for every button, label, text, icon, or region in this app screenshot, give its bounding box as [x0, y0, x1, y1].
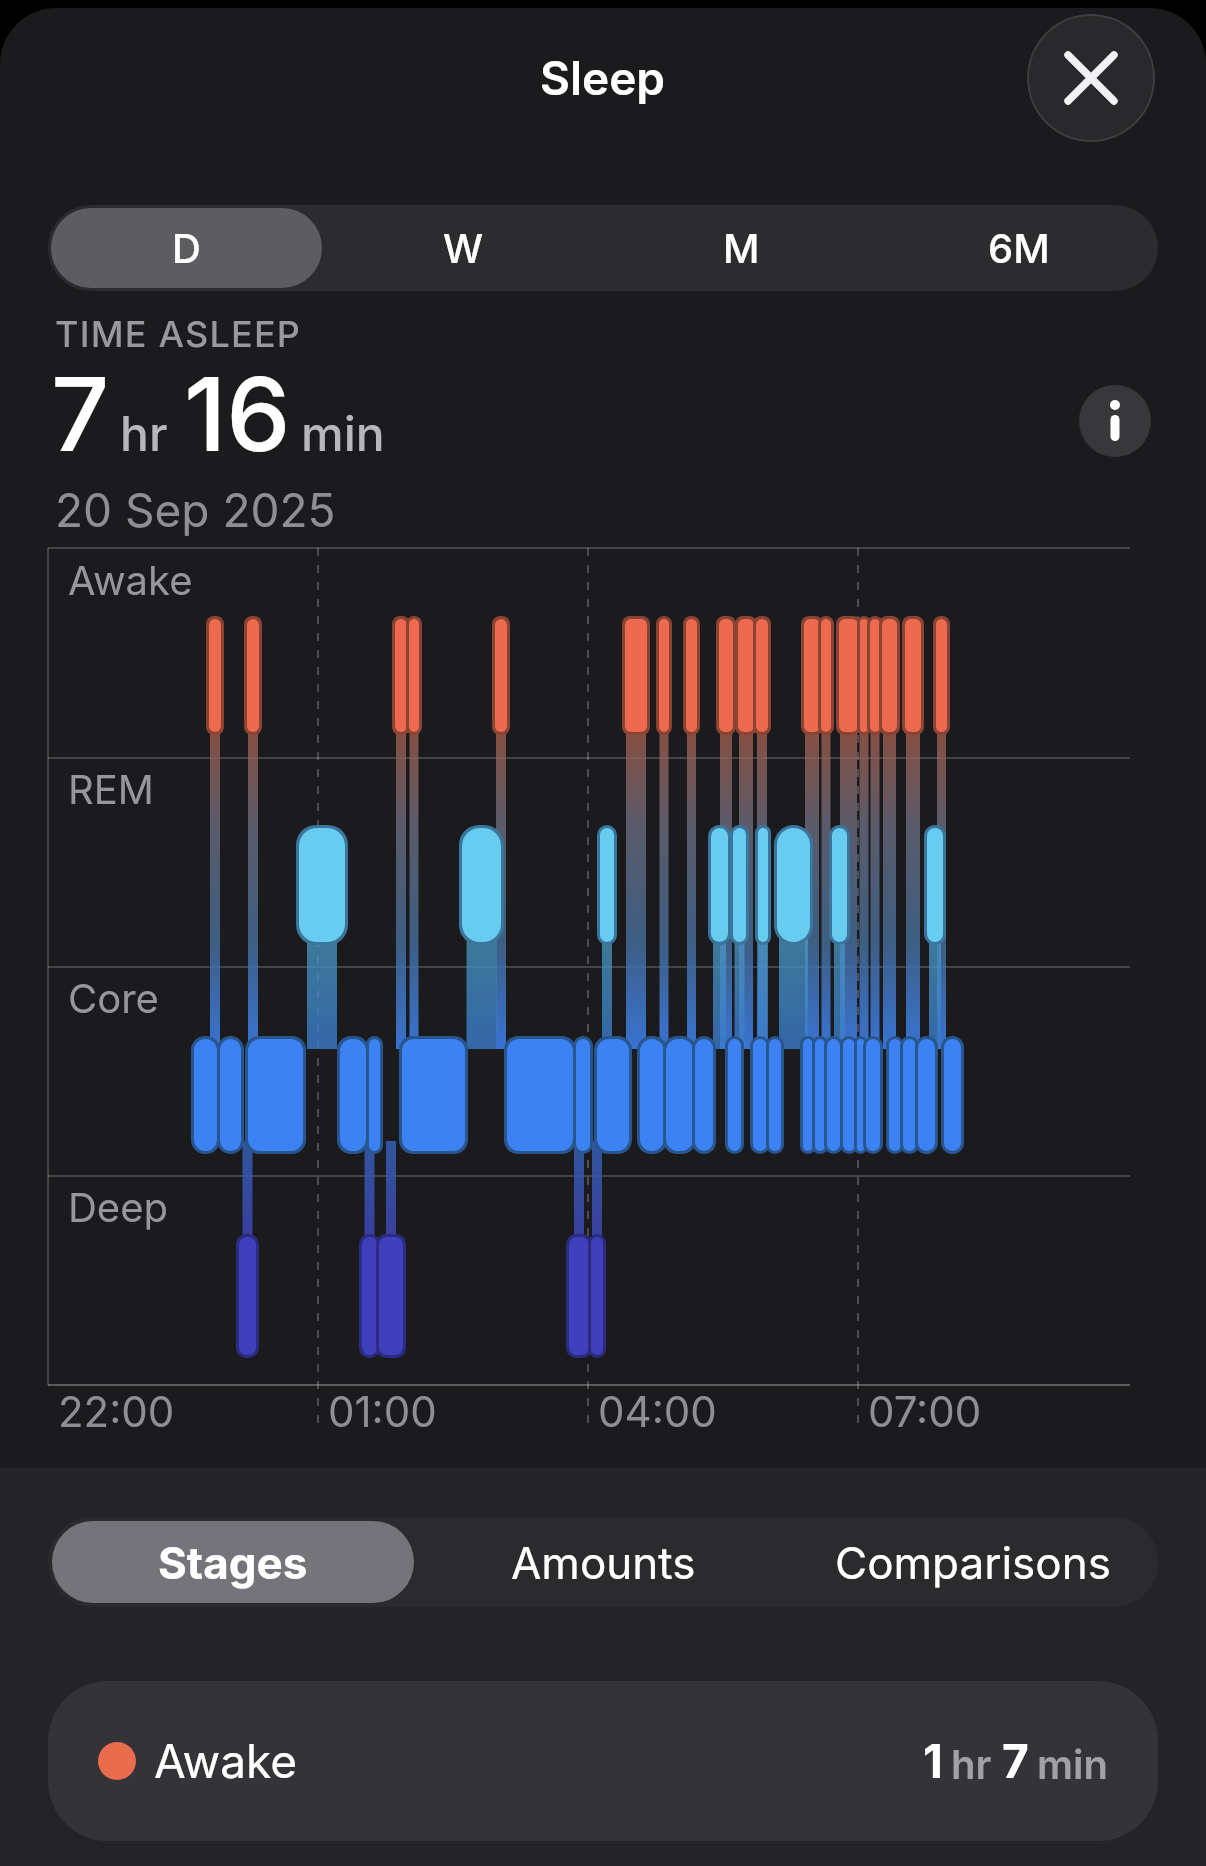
staticText: hr [120, 404, 168, 462]
staticText: D [172, 224, 201, 272]
staticText: 1 [923, 1733, 943, 1789]
button[interactable]: D [48, 205, 325, 291]
button[interactable] [1027, 14, 1155, 142]
staticText: 16 [184, 352, 291, 475]
staticText: Deep [68, 1183, 168, 1231]
staticText: 07:00 [868, 1386, 982, 1437]
button[interactable]: M [602, 205, 880, 291]
staticText: Core [68, 974, 159, 1022]
staticText: 7 [1002, 1733, 1029, 1789]
staticText: 20 Sep 2025 [55, 482, 336, 538]
staticText: hr [951, 1740, 992, 1788]
staticText: min [1037, 1740, 1108, 1788]
button[interactable]: Comparisons [788, 1517, 1158, 1607]
staticText: W [443, 224, 484, 272]
button[interactable]: Stages [48, 1517, 418, 1607]
staticText: 04:00 [598, 1386, 717, 1437]
staticText: Stages [158, 1536, 308, 1589]
staticText: TIME ASLEEP [55, 312, 302, 356]
staticText: REM [68, 765, 154, 813]
button[interactable]: 6M [880, 205, 1158, 291]
staticText: 22:00 [58, 1386, 175, 1437]
staticText: Awake [68, 556, 193, 604]
staticText: 7 [51, 352, 110, 475]
button[interactable]: W [325, 205, 602, 291]
staticText: 6M [988, 224, 1050, 272]
button[interactable]: Awake [48, 1681, 1158, 1841]
button[interactable] [1079, 385, 1151, 457]
staticText: Amounts [511, 1536, 696, 1589]
staticText: Awake [154, 1733, 298, 1789]
staticText: 01:00 [328, 1386, 437, 1437]
staticText: min [301, 404, 385, 462]
staticText: Comparisons [835, 1536, 1111, 1589]
staticText: M [723, 224, 760, 272]
button[interactable]: Amounts [418, 1517, 788, 1607]
staticText: Sleep [540, 50, 666, 106]
